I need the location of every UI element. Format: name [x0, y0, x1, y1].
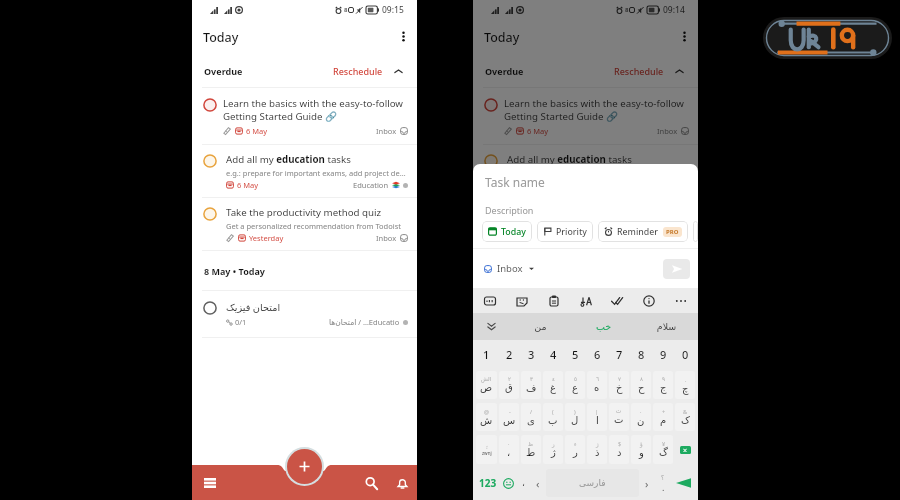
- button[interactable]: [693, 221, 698, 242]
- button[interactable]: GIF: [482, 293, 498, 309]
- button[interactable]: ؟: [655, 468, 671, 498]
- button[interactable]: الش: [476, 371, 497, 399]
- button[interactable]: Add all my education tasks: [473, 145, 698, 197]
- button[interactable]: ٨: [631, 371, 651, 399]
- button[interactable]: فارسی: [546, 469, 639, 497]
- button[interactable]: ژ: [587, 435, 607, 464]
- staticText: ›: [645, 476, 649, 491]
- button[interactable]: 7: [609, 342, 629, 367]
- button[interactable]: ؛: [476, 435, 497, 464]
- button[interactable]: امتحان فیزیک: [192, 291, 417, 337]
- staticText: س: [503, 415, 516, 427]
- button[interactable]: Today: [482, 221, 532, 242]
- button[interactable]: Translate: [578, 293, 594, 309]
- button[interactable]: ؤ: [631, 435, 651, 464]
- button[interactable]: 3: [521, 342, 541, 367]
- staticText: Yesterday: [249, 233, 284, 243]
- button[interactable]: ): [565, 403, 585, 431]
- staticText: ؤ: [640, 441, 643, 447]
- button[interactable]: Search: [360, 472, 382, 494]
- staticText: ٦: [596, 376, 599, 382]
- button[interactable]: +: [653, 403, 673, 431]
- button[interactable]: Emoji: [500, 475, 516, 491]
- button[interactable]: More options: [393, 26, 413, 46]
- staticText: $: [618, 440, 622, 447]
- staticText: 6: [594, 347, 601, 362]
- button[interactable]: Clipboard: [546, 293, 562, 309]
- button[interactable]: More: [673, 293, 689, 309]
- button[interactable]: Next: [639, 468, 655, 498]
- staticText: ن: [637, 415, 645, 427]
- button[interactable]: 123: [476, 468, 500, 498]
- staticText: Inbox: [497, 262, 523, 275]
- button[interactable]: 6: [587, 342, 607, 367]
- button[interactable]: ٣: [521, 371, 541, 399]
- button[interactable]: $: [609, 435, 629, 464]
- staticText: ¥: [662, 440, 666, 447]
- button[interactable]: Previous: [530, 468, 546, 498]
- button[interactable]: Add task: [287, 449, 322, 484]
- button[interactable]: Overdue: [473, 55, 698, 87]
- button[interactable]: |: [587, 403, 607, 431]
- button[interactable]: &: [675, 403, 695, 431]
- button[interactable]: Collapse suggestions: [473, 313, 509, 340]
- button[interactable]: (: [543, 403, 563, 431]
- staticText: Inbox: [657, 126, 678, 136]
- button[interactable]: Learn the basics with the easy-to-follow…: [192, 88, 417, 144]
- button[interactable]: من: [509, 321, 572, 332]
- button[interactable]: ¥: [653, 435, 673, 464]
- button[interactable]: /: [521, 403, 541, 431]
- button[interactable]: 2: [499, 342, 519, 367]
- button[interactable]: ·: [631, 403, 651, 431]
- button[interactable]: Send: [663, 259, 690, 279]
- button[interactable]: -: [499, 403, 519, 431]
- button[interactable]: Take the productivity method quiz: [192, 198, 417, 250]
- button[interactable]: @: [476, 403, 497, 431]
- button[interactable]: 1: [476, 342, 497, 367]
- staticText: ،: [507, 447, 511, 459]
- button[interactable]: سلام: [635, 321, 698, 332]
- button[interactable]: ث: [609, 403, 629, 431]
- button[interactable]: ٥: [565, 371, 585, 399]
- staticText: م: [660, 415, 667, 427]
- button[interactable]: ·: [499, 435, 519, 464]
- button[interactable]: Learn the basics with the easy-to-follow…: [473, 88, 698, 144]
- staticText: Add all my education tasks: [507, 153, 632, 166]
- button[interactable]: Priority: [537, 221, 593, 242]
- button[interactable]: Backspace: [674, 433, 696, 466]
- button[interactable]: Add all my education tasks: [192, 145, 417, 197]
- staticText: ث: [616, 408, 622, 414]
- button[interactable]: More options: [674, 26, 694, 46]
- button[interactable]: Menu: [199, 472, 221, 494]
- button[interactable]: ٧: [609, 371, 629, 399]
- button[interactable]: 9: [653, 342, 673, 367]
- staticText: امتحان فیزیک: [226, 301, 281, 314]
- staticText: ظ: [528, 441, 534, 447]
- button[interactable]: ٤: [543, 371, 563, 399]
- button[interactable]: Spell check: [609, 293, 625, 309]
- button[interactable]: ٩: [653, 371, 673, 399]
- button[interactable]: Reminder: [598, 221, 688, 242]
- staticText: Add all my education tasks: [226, 153, 351, 166]
- button[interactable]: ز: [543, 435, 563, 464]
- button[interactable]: Enter: [671, 468, 695, 498]
- button[interactable]: Info: [641, 293, 657, 309]
- button[interactable]: .: [675, 371, 695, 399]
- button[interactable]: ظ: [521, 435, 541, 464]
- button[interactable]: ،: [516, 468, 530, 498]
- staticText: ک: [681, 415, 690, 427]
- button[interactable]: ء: [565, 435, 585, 464]
- button[interactable]: 4: [543, 342, 563, 367]
- button[interactable]: خب: [572, 321, 635, 332]
- button[interactable]: 8: [631, 342, 651, 367]
- button[interactable]: Stickers: [514, 293, 530, 309]
- button[interactable]: ٢: [499, 371, 519, 399]
- button[interactable]: Overdue: [192, 55, 417, 87]
- button[interactable]: ٦: [587, 371, 607, 399]
- staticText: فارسی: [579, 478, 606, 488]
- staticText: ط: [526, 447, 536, 459]
- staticText: /: [530, 408, 533, 415]
- button[interactable]: 5: [565, 342, 585, 367]
- button[interactable]: Notifications: [391, 472, 413, 494]
- button[interactable]: 0: [675, 342, 695, 367]
